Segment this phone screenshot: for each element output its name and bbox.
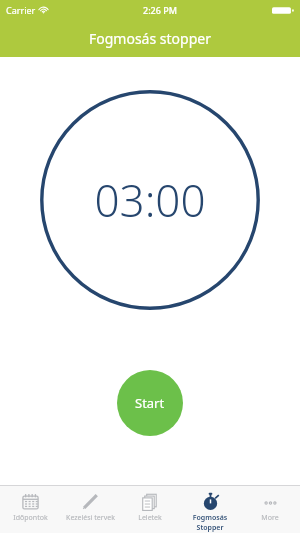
- staticText: Start: [135, 394, 165, 412]
- staticText: Fogmosás stopper: [89, 29, 211, 48]
- button[interactable]: Időpontok: [0, 486, 60, 533]
- button[interactable]: More: [240, 486, 300, 533]
- other: Leletek: [141, 492, 160, 511]
- other: More: [261, 492, 280, 511]
- staticText: Fogmosás Stopper: [180, 513, 240, 533]
- other: Fogmosás Stopper: [201, 492, 220, 511]
- staticText: Időpontok: [13, 513, 48, 523]
- staticText: 03:00: [94, 170, 206, 230]
- staticText: Leletek: [138, 513, 162, 523]
- button[interactable]: Start: [117, 370, 183, 436]
- button[interactable]: Leletek: [120, 486, 180, 533]
- staticText: Carrier: [6, 4, 36, 16]
- staticText: Kezelési tervek: [66, 513, 115, 523]
- other: Időpontok: [21, 492, 40, 511]
- staticText: More: [261, 513, 279, 523]
- staticText: 2:26 PM: [143, 4, 177, 16]
- other: Kezelési tervek: [81, 492, 100, 511]
- button[interactable]: Kezelési tervek: [60, 486, 120, 533]
- button[interactable]: Fogmosás Stopper: [180, 486, 240, 533]
